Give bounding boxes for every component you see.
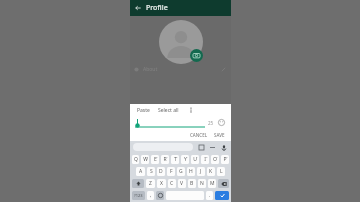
staticText: ?123	[134, 193, 143, 198]
staticText: 5	[176, 155, 178, 158]
staticText: About	[143, 66, 158, 73]
button[interactable]: O	[211, 155, 219, 164]
button[interactable]: SAVE	[211, 130, 231, 140]
staticText: 8	[206, 155, 208, 158]
staticText: Select all	[158, 107, 179, 114]
button[interactable]: F	[167, 167, 175, 176]
staticText: 25	[208, 120, 214, 126]
button[interactable]: J	[197, 167, 205, 176]
staticText: D	[159, 168, 163, 175]
button[interactable]: W	[141, 155, 149, 164]
button[interactable]: R	[161, 155, 169, 164]
staticText: R	[163, 156, 167, 163]
staticText: H	[189, 168, 193, 175]
button[interactable]: T	[171, 155, 179, 164]
staticText: Profile	[146, 3, 168, 13]
staticText: 6	[186, 155, 188, 158]
staticText: SAVE	[214, 132, 225, 138]
staticText: G	[179, 168, 183, 175]
button[interactable]: Emoji	[217, 118, 226, 127]
staticText: E	[154, 156, 157, 163]
staticText: .	[209, 192, 211, 199]
staticText: M	[210, 180, 215, 187]
button[interactable]: C	[168, 179, 176, 188]
button[interactable]: Q	[132, 155, 139, 164]
button[interactable]: M	[208, 179, 216, 188]
staticText: J	[200, 168, 202, 175]
staticText: 7	[196, 155, 198, 158]
staticText: CANCEL	[190, 132, 208, 138]
staticText: X	[160, 180, 163, 187]
button[interactable]: Backspace	[218, 179, 229, 188]
button[interactable]: V	[178, 179, 186, 188]
staticText: F	[170, 168, 173, 175]
button[interactable]: B	[188, 179, 196, 188]
button[interactable]: K	[207, 167, 215, 176]
staticText: 4	[166, 155, 168, 158]
staticText: V	[180, 180, 184, 187]
button[interactable]: Voice input	[219, 143, 228, 152]
button[interactable]: Y	[181, 155, 189, 164]
staticText: P	[223, 156, 227, 163]
button[interactable]: ?123	[132, 191, 145, 200]
staticText: Paste	[137, 107, 150, 114]
button[interactable]: More options	[186, 105, 196, 115]
staticText: 0	[226, 155, 228, 158]
staticText: Q	[134, 156, 138, 163]
button[interactable]: Back	[133, 3, 143, 13]
button[interactable]: A	[136, 167, 145, 176]
staticText: 3	[156, 155, 158, 158]
button[interactable]: ,	[147, 191, 154, 200]
staticText: Y	[184, 156, 187, 163]
staticText: ,	[150, 192, 152, 199]
button[interactable]: N	[198, 179, 206, 188]
staticText: U	[193, 156, 197, 163]
staticText: Z	[149, 180, 152, 187]
staticText: T	[174, 156, 177, 163]
staticText: 2	[146, 155, 148, 158]
button[interactable]: Clipboard	[197, 143, 205, 151]
button[interactable]: Select all	[157, 107, 180, 114]
button[interactable]: Shift	[132, 179, 144, 188]
button[interactable]: D	[157, 167, 165, 176]
button[interactable]: P	[221, 155, 229, 164]
staticText: L	[220, 168, 223, 175]
button[interactable]: CANCEL	[187, 130, 211, 140]
button[interactable]: G	[177, 167, 185, 176]
button[interactable]: U	[191, 155, 199, 164]
button[interactable]: X	[157, 179, 166, 188]
staticText: A	[139, 168, 143, 175]
button[interactable]: H	[187, 167, 195, 176]
button[interactable]: .	[206, 191, 213, 200]
button[interactable]: S	[147, 167, 155, 176]
button[interactable]: Change photo	[190, 49, 203, 62]
button[interactable]: I	[201, 155, 209, 164]
staticText: 1	[136, 155, 138, 158]
button[interactable]: Emoji	[156, 191, 164, 200]
button[interactable]: Edit	[219, 65, 228, 74]
button[interactable]: Settings	[208, 143, 216, 151]
button[interactable]: Z	[146, 179, 155, 188]
staticText: K	[209, 168, 213, 175]
button[interactable]: E	[151, 155, 159, 164]
staticText: W	[143, 156, 148, 163]
staticText: S	[150, 168, 153, 175]
staticText: I	[204, 156, 206, 163]
button[interactable]: L	[217, 167, 225, 176]
staticText: 9	[216, 155, 218, 158]
staticText: C	[170, 180, 174, 187]
staticText: B	[190, 180, 194, 187]
button[interactable]: Paste	[136, 107, 151, 114]
staticText: O	[213, 156, 217, 163]
staticText: N	[200, 180, 204, 187]
button[interactable]: Enter	[215, 191, 229, 200]
